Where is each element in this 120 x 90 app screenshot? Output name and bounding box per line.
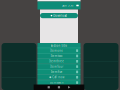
button[interactable]: Download [40, 13, 78, 18]
staticText: Item two [51, 54, 63, 58]
button[interactable]: Item five [37, 69, 80, 74]
button[interactable]: Recents [48, 86, 50, 88]
staticText: Item one [50, 49, 63, 52]
staticText: Item five [51, 70, 63, 74]
button[interactable]: Item seven [37, 80, 80, 85]
staticText: Download [53, 14, 67, 17]
staticText: Call now [52, 75, 64, 79]
button[interactable]: Item three [37, 58, 80, 64]
button[interactable]: Item four [37, 64, 80, 69]
staticText: Section title [50, 44, 67, 47]
staticText: Item three [49, 59, 64, 63]
button[interactable]: Back [68, 86, 70, 89]
button[interactable]: Call now [37, 74, 80, 80]
button[interactable]: Home [58, 86, 60, 88]
button[interactable]: Item one [37, 48, 80, 53]
button[interactable]: Item two [37, 53, 80, 58]
staticText: Sun 9:41 [62, 4, 75, 7]
staticText: Item seven [50, 81, 64, 84]
staticText: Item four [50, 65, 63, 68]
